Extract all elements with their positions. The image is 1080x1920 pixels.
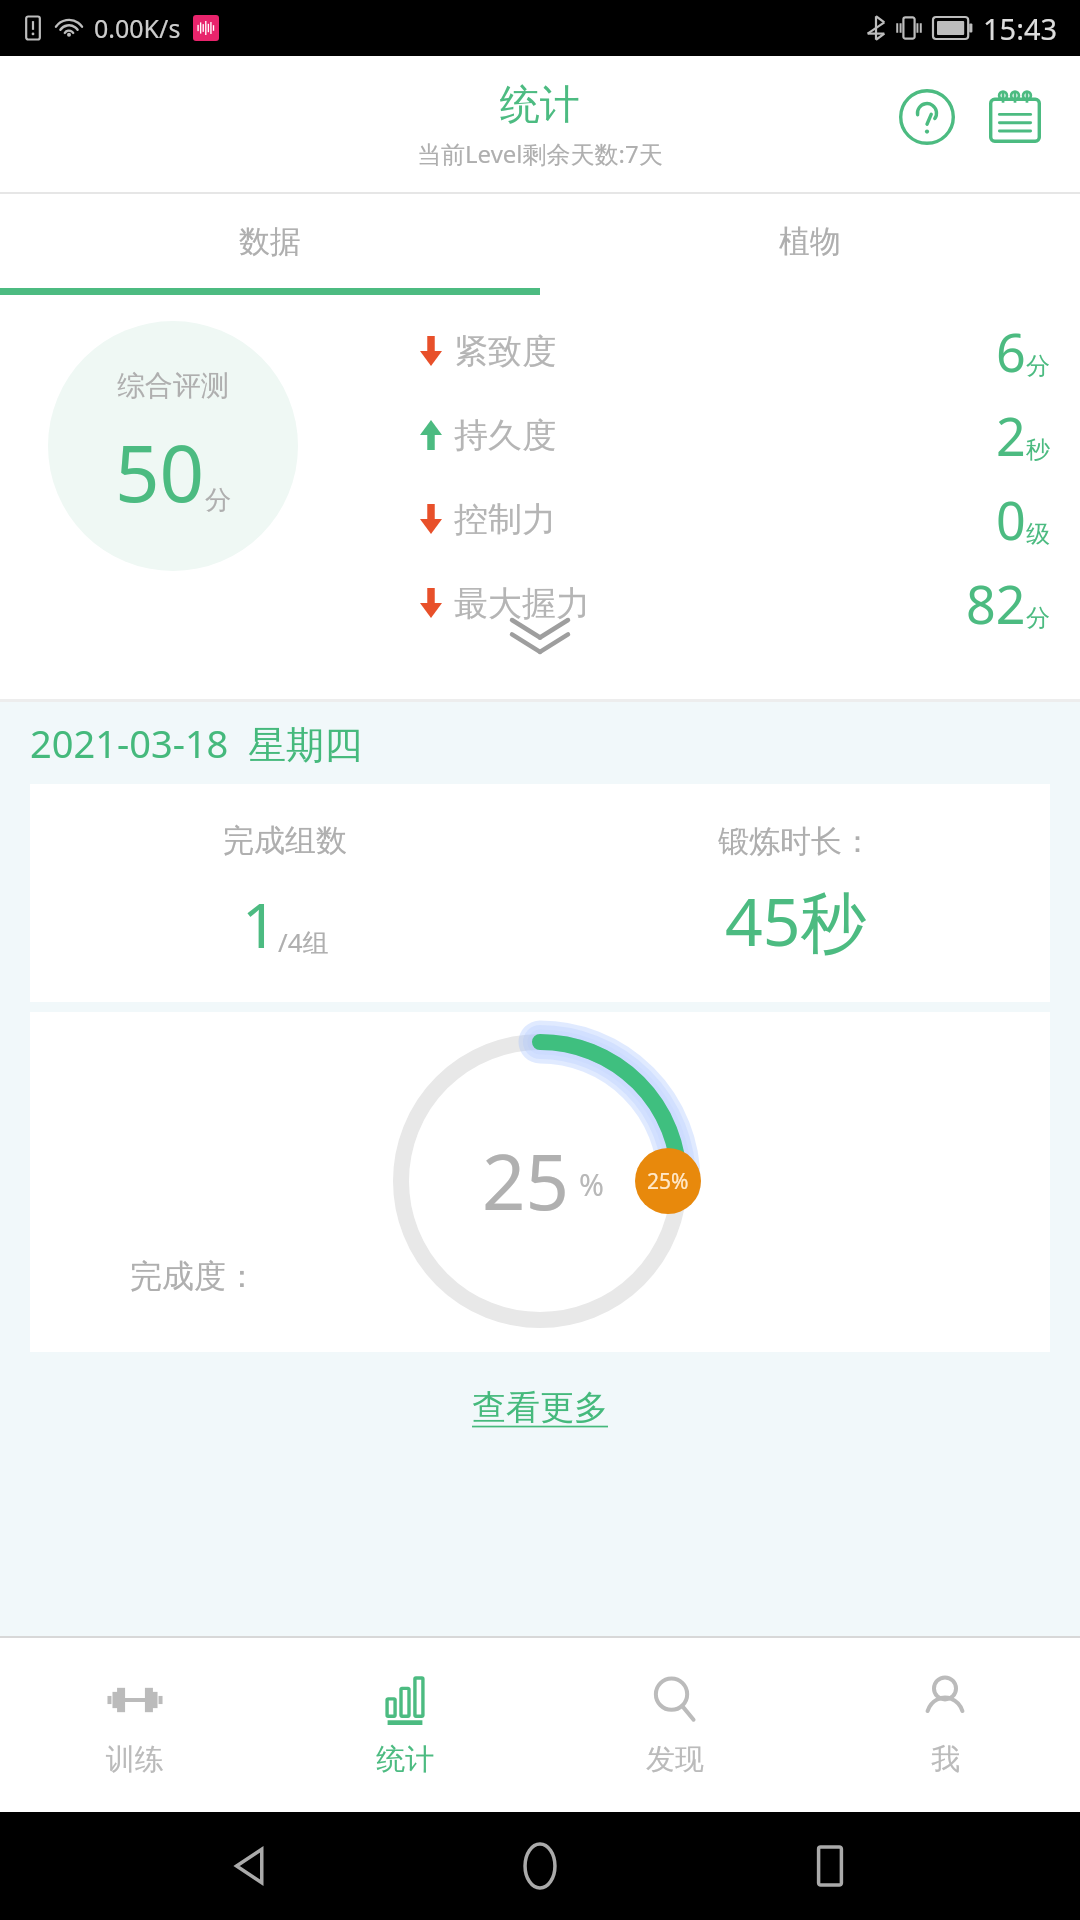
staticText: 训练 — [106, 1741, 164, 1778]
staticText: 完成度： — [130, 1256, 258, 1296]
staticText: 秒 — [1026, 435, 1050, 465]
staticText: 1 — [242, 882, 278, 966]
staticText: 植物 — [779, 222, 841, 261]
button[interactable]: 完成度： — [30, 1012, 1050, 1352]
staticText: 25 — [482, 1129, 569, 1233]
staticText: 0 — [996, 484, 1026, 555]
staticText: 级 — [1026, 519, 1050, 549]
staticText: 82 — [966, 568, 1026, 639]
staticText: 锻炼时长： — [718, 822, 873, 861]
staticText: 分 — [205, 484, 231, 517]
staticText: 发现 — [646, 1741, 704, 1778]
staticText: 分 — [1026, 603, 1050, 633]
button[interactable]: Help — [892, 82, 962, 152]
button[interactable]: Home — [500, 1826, 580, 1906]
staticText: 查看更多 — [472, 1386, 608, 1429]
button[interactable]: 统计 — [270, 1636, 540, 1812]
button[interactable]: 训练 — [0, 1636, 270, 1812]
staticText: 最大握力 — [454, 582, 590, 625]
staticText: 当前Level剩余天数:7天 — [417, 137, 663, 170]
button[interactable]: 完成组数 — [30, 784, 1050, 1002]
button[interactable]: 植物 — [540, 194, 1080, 288]
staticText: 2021-03-18 星期四 — [30, 717, 363, 769]
staticText: 我 — [931, 1741, 960, 1778]
staticText: 统计 — [376, 1741, 434, 1778]
button[interactable]: Back — [210, 1826, 290, 1906]
staticText: 15:43 — [983, 9, 1058, 48]
staticText: /4组 — [278, 924, 329, 960]
staticText: 50 — [115, 419, 205, 525]
staticText: 紧致度 — [454, 330, 556, 373]
button[interactable]: 数据 — [0, 194, 540, 288]
staticText: 完成组数 — [223, 821, 347, 860]
staticText: 综合评测 — [117, 368, 229, 403]
staticText: 统计 — [500, 79, 580, 129]
staticText: 25% — [647, 1167, 689, 1196]
button[interactable]: 我 — [810, 1636, 1080, 1812]
button[interactable]: 查看更多 — [0, 1352, 1080, 1462]
staticText: 0.00K/s — [94, 11, 181, 45]
button[interactable]: 发现 — [540, 1636, 810, 1812]
button[interactable]: Expand — [498, 597, 582, 681]
staticText: 分 — [1026, 351, 1050, 381]
staticText: 持久度 — [454, 414, 556, 457]
button[interactable]: Recents — [790, 1826, 870, 1906]
button[interactable]: Records — [980, 82, 1050, 152]
staticText: 数据 — [239, 222, 301, 261]
staticText: 控制力 — [454, 498, 556, 541]
staticText: % — [579, 1164, 604, 1205]
staticText: 45秒 — [725, 875, 867, 965]
staticText: 2 — [996, 400, 1026, 471]
staticText: 6 — [996, 316, 1026, 387]
